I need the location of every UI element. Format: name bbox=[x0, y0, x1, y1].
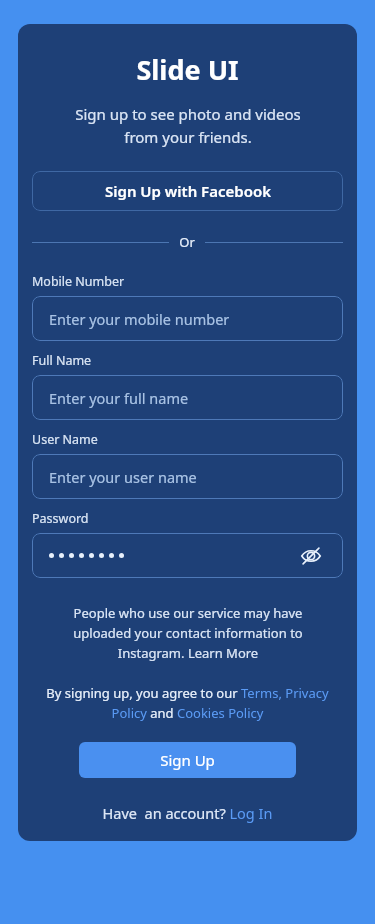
button[interactable]: Show password bbox=[296, 541, 326, 571]
staticText: People who use our service may have uplo… bbox=[73, 604, 303, 662]
button[interactable]: Enter your full name bbox=[32, 375, 343, 420]
staticText: Enter your mobile number bbox=[49, 309, 230, 329]
staticText: Or bbox=[179, 233, 195, 251]
button[interactable]: Sign Up with Facebook bbox=[32, 171, 343, 211]
button[interactable]: Have an account? Log In bbox=[32, 803, 343, 823]
staticText: Slide UI bbox=[136, 51, 239, 88]
staticText: Enter your full name bbox=[49, 388, 189, 408]
staticText: Password bbox=[32, 510, 343, 527]
staticText: Sign Up with Facebook bbox=[105, 181, 271, 201]
button[interactable]: Sign Up bbox=[79, 742, 296, 778]
button[interactable]: By signing up, you agree to our Terms, P… bbox=[32, 684, 343, 722]
button[interactable]: Enter your user name bbox=[32, 454, 343, 499]
staticText: Full Name bbox=[32, 352, 343, 369]
staticText: Mobile Number bbox=[32, 273, 343, 290]
staticText: Sign Up bbox=[160, 750, 215, 770]
button[interactable]: Enter your mobile number bbox=[32, 296, 343, 341]
button[interactable]: Show password bbox=[32, 533, 343, 578]
staticText: User Name bbox=[32, 431, 343, 448]
staticText: Sign up to see photo and videos from you… bbox=[75, 104, 301, 147]
staticText: Enter your user name bbox=[49, 467, 197, 487]
